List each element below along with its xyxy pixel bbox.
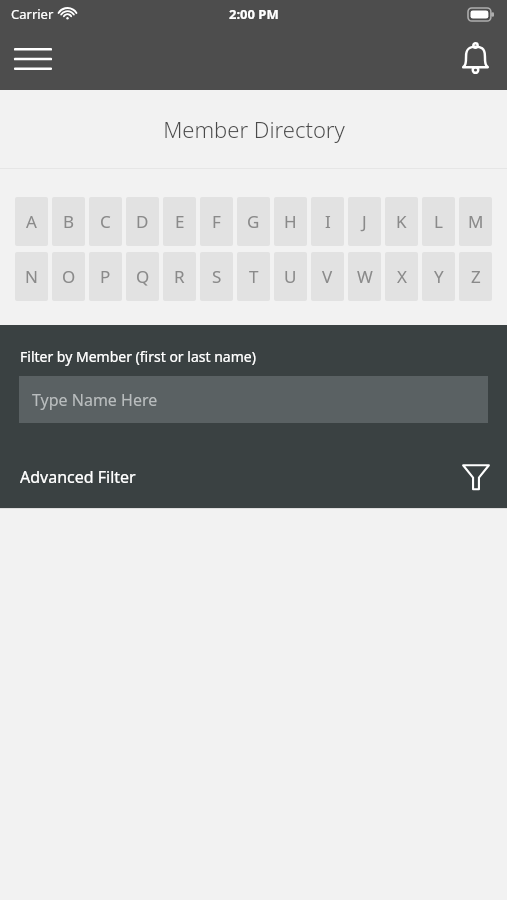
button[interactable]: K [385,197,418,246]
staticText: Carrier [11,5,54,23]
button[interactable]: E [163,197,196,246]
other: Advanced Filter [462,463,490,491]
button[interactable]: J [348,197,381,246]
button[interactable]: B [52,197,85,246]
staticText: U [284,265,297,288]
button[interactable]: O [52,252,85,301]
button[interactable]: I [311,197,344,246]
button[interactable]: W [348,252,381,301]
button[interactable]: A [15,197,48,246]
button[interactable]: Q [126,252,159,301]
button[interactable]: Y [422,252,455,301]
staticText: S [212,265,222,288]
staticText: C [100,210,111,233]
button[interactable]: Advanced Filter [0,445,507,508]
button[interactable]: Z [459,252,492,301]
staticText: B [63,210,75,233]
staticText: H [284,210,297,233]
staticText: 2:00 PM [229,5,279,23]
staticText: Type Name Here [32,389,158,411]
button[interactable]: Type Name Here [19,376,488,423]
staticText: V [322,265,333,288]
button[interactable]: Notifications [448,32,502,86]
staticText: G [247,210,260,233]
staticText: Filter by Member (first or last name) [20,347,256,366]
staticText: Q [136,265,150,288]
button[interactable]: X [385,252,418,301]
button[interactable]: H [274,197,307,246]
button[interactable]: R [163,252,196,301]
button[interactable]: S [200,252,233,301]
staticText: T [249,265,259,288]
staticText: Member Directory [163,114,345,144]
staticText: D [136,210,149,233]
staticText: I [325,210,331,233]
staticText: W [357,265,373,288]
staticText: A [26,210,37,233]
button[interactable]: L [422,197,455,246]
staticText: K [396,210,407,233]
button[interactable]: Menu [6,32,60,86]
staticText: N [25,265,38,288]
staticText: E [175,210,185,233]
button[interactable]: V [311,252,344,301]
button[interactable]: C [89,197,122,246]
staticText: Advanced Filter [20,466,136,488]
button[interactable]: N [15,252,48,301]
staticText: J [362,210,367,233]
staticText: Y [434,265,444,288]
button[interactable]: T [237,252,270,301]
button[interactable]: P [89,252,122,301]
staticText: R [174,265,185,288]
staticText: X [397,265,407,288]
staticText: Z [471,265,481,288]
staticText: M [468,210,484,233]
button[interactable]: D [126,197,159,246]
staticText: L [434,210,443,233]
button[interactable]: G [237,197,270,246]
button[interactable]: U [274,252,307,301]
button[interactable]: F [200,197,233,246]
staticText: F [212,210,221,233]
button[interactable]: M [459,197,492,246]
staticText: P [100,265,111,288]
staticText: O [62,265,76,288]
